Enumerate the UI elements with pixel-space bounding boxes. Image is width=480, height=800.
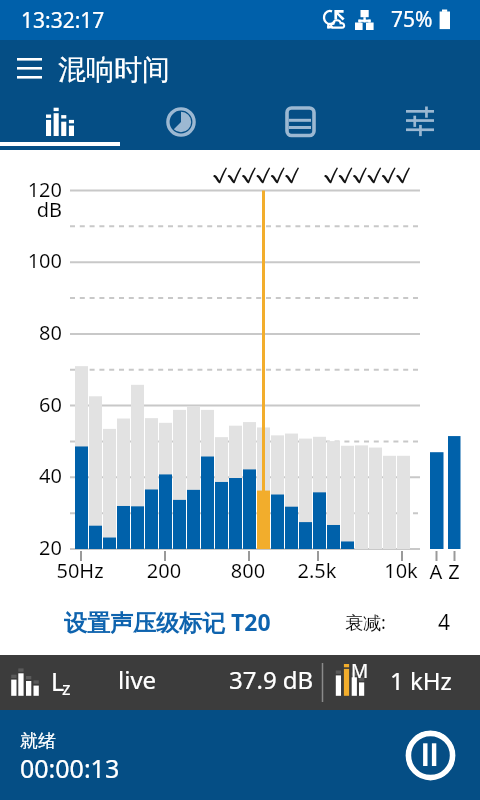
staticText: 衰减: [345,610,386,635]
staticText: 120 [14,176,62,203]
staticText: 2.5k [287,557,347,584]
button[interactable]: Settings [360,100,480,150]
staticText: 37.9 dB [229,663,314,696]
button[interactable]: Spectrum [0,100,120,150]
staticText: 就绪 [20,730,56,753]
staticText: 混响时间 [58,52,170,87]
staticText: L [51,664,65,698]
staticText: 4 [438,608,451,637]
staticText: 75% [391,5,433,34]
button[interactable]: 设置声压级标记 T20 [64,606,271,637]
staticText: 13:32:17 [21,6,105,35]
staticText: z [62,676,71,701]
staticText: 800 [218,557,278,584]
staticText: dB [14,196,62,223]
button[interactable]: Reverberation time [120,100,240,150]
button[interactable]: Table [240,100,360,150]
staticText: 20 [14,534,62,561]
button[interactable]: Pause [405,730,456,781]
staticText: live [118,663,157,696]
button[interactable]: Menu [6,47,52,93]
staticText: 200 [134,557,194,584]
staticText: A [406,558,466,585]
staticText: 1 kHz [390,664,452,697]
staticText: 80 [14,319,62,346]
staticText: 50Hz [50,557,110,584]
staticText: 10k [371,557,431,584]
staticText: 00:00:13 [20,751,120,785]
staticText: Z [424,558,480,585]
staticText: 100 [14,247,62,274]
staticText: 40 [14,462,62,489]
staticText: M [351,658,369,684]
button[interactable] [0,655,322,710]
staticText: 60 [14,391,62,418]
button[interactable] [323,655,480,710]
